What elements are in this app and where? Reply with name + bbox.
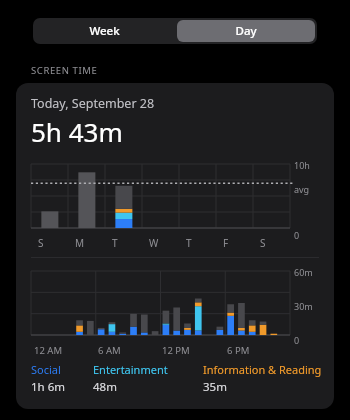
staticText: Information & Reading — [203, 362, 322, 377]
staticText: W — [149, 236, 159, 250]
staticText: Entertainment — [93, 362, 168, 377]
button[interactable]: Information & Reading — [203, 362, 324, 395]
staticText: 5h 43m — [31, 114, 123, 149]
staticText: 12 PM — [162, 344, 190, 357]
staticText: Day — [235, 23, 257, 39]
staticText: 10h — [294, 159, 310, 171]
staticText: 1h 6m — [31, 379, 66, 395]
staticText: SCREEN TIME — [31, 64, 98, 77]
staticText: Week — [89, 23, 120, 39]
button[interactable]: Social — [31, 362, 93, 395]
button[interactable]: Week — [35, 20, 173, 42]
staticText: 35m — [203, 379, 227, 395]
staticText: 6 PM — [227, 344, 250, 357]
staticText: S — [38, 236, 44, 250]
staticText: T — [186, 236, 192, 250]
staticText: 60m — [294, 266, 313, 278]
button[interactable]: Day — [177, 20, 315, 42]
staticText: 0 — [294, 229, 300, 241]
staticText: F — [223, 236, 229, 250]
staticText: 48m — [93, 379, 117, 395]
staticText: Social — [31, 362, 61, 377]
staticText: S — [260, 236, 266, 250]
staticText: 30m — [294, 300, 313, 312]
staticText: 6 AM — [98, 344, 121, 357]
staticText: avg — [294, 183, 310, 195]
staticText: 12 AM — [34, 344, 63, 357]
staticText: M — [75, 236, 85, 250]
staticText: 0 — [294, 334, 300, 346]
staticText: T — [112, 236, 118, 250]
staticText: Today, September 28 — [31, 95, 155, 112]
button[interactable]: Entertainment — [93, 362, 203, 395]
